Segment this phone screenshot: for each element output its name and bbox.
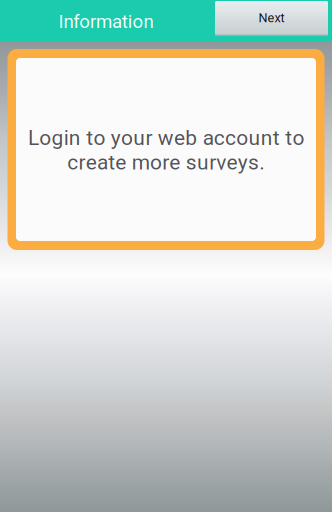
staticText: Login to your web account to create more… xyxy=(28,125,304,175)
staticText: Information xyxy=(58,11,153,32)
staticText: Next xyxy=(258,11,284,25)
button[interactable]: Next xyxy=(215,1,328,36)
